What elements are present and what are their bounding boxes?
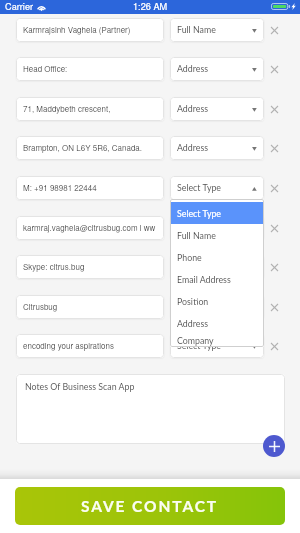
button[interactable]: Remove field [266,101,283,118]
staticText: encoding your aspirations [23,340,114,351]
button[interactable]: Remove field [266,140,283,157]
button[interactable]: Position [170,290,264,312]
button[interactable]: Add field [263,435,285,457]
button[interactable]: Select Type [170,202,264,224]
button[interactable]: Remove field [266,180,283,197]
button[interactable]: Skype: citrus.bug [16,255,164,279]
staticText: Address [177,103,208,114]
staticText: Company [177,335,214,346]
button[interactable]: Phone [170,246,264,268]
button[interactable]: Email Address [170,268,264,290]
staticText: Select Type [177,340,221,351]
button[interactable]: 71, Maddybeth crescent, [16,97,164,121]
staticText: Carrier [5,0,34,12]
staticText: Phone [177,252,202,263]
button[interactable]: Company [170,334,264,347]
button[interactable]: encoding your aspirations [16,334,164,358]
button[interactable]: Address [170,136,264,160]
staticText: Address [177,142,208,153]
staticText: Select Type [177,301,221,312]
button[interactable]: Remove field [266,220,283,237]
button[interactable]: Head Office: [16,57,164,81]
staticText: Select Type [177,208,221,219]
staticText: Brampton, ON L6Y 5R6, Canada. [23,142,143,153]
staticText: SAVE CONTACT [81,497,219,516]
button[interactable]: Full Name [170,18,264,42]
button[interactable]: Select Type [170,176,264,200]
button[interactable]: Address [170,97,264,121]
staticText: Karmrajsinh Vaghela (Partner) [23,24,131,35]
staticText: Address [177,63,208,74]
staticText: Notes Of Business Scan App [25,381,135,392]
button[interactable]: Remove field [266,22,283,39]
staticText: Full Name [177,24,216,35]
button[interactable]: Remove field [266,338,283,355]
staticText: Full Name [177,230,216,241]
button[interactable]: M: +91 98981 22444 [16,176,164,200]
staticText: Skype: citrus.bug [23,261,85,272]
button[interactable]: Full Name [170,224,264,246]
button[interactable]: Address [170,57,264,81]
staticText: 1:26 AM [133,0,168,12]
button[interactable]: Remove field [266,61,283,78]
button[interactable]: Select Type [170,255,264,279]
staticText: M: +91 98981 22444 [23,182,97,193]
button[interactable]: karmraj.vaghela@citrusbug.com l ww [16,216,164,240]
staticText: Email Address [177,274,231,285]
staticText: Position [177,296,209,307]
staticText: Head Office: [23,63,68,74]
staticText: Select Type [177,182,221,193]
button[interactable]: Notes Of Business Scan App [16,374,285,444]
staticText: karmraj.vaghela@citrusbug.com l ww [23,222,156,233]
staticText: 71, Maddybeth crescent, [23,103,111,114]
button[interactable]: Brampton, ON L6Y 5R6, Canada. [16,136,164,160]
button[interactable]: Karmrajsinh Vaghela (Partner) [16,18,164,42]
button[interactable]: Address [170,312,264,334]
staticText: Citrusbug [23,301,58,312]
button[interactable]: SAVE CONTACT [15,487,285,525]
button[interactable]: Citrusbug [16,295,164,319]
button[interactable]: Select Type [170,216,264,240]
button[interactable]: Remove field [266,299,283,316]
staticText: Select Type [177,222,221,233]
button[interactable]: Select Type [170,334,264,358]
button[interactable]: Select Type [170,295,264,319]
button[interactable]: Remove field [266,259,283,276]
staticText: Address [177,318,208,329]
